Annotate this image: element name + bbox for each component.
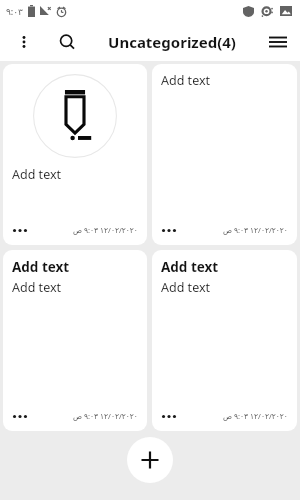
staticText: Add text xyxy=(161,258,219,276)
staticText: ٩:٠٣ xyxy=(6,5,23,17)
staticText: Add text xyxy=(161,279,211,296)
button[interactable]: Uncategorized(4) xyxy=(108,32,236,52)
staticText: ١٢/٠٢/٢٠٢٠ ٩:٠٣ ص xyxy=(73,225,138,235)
button[interactable]: Add note xyxy=(127,437,173,483)
staticText: Add text xyxy=(161,72,211,89)
staticText: Add text xyxy=(12,279,62,296)
button[interactable]: Add text xyxy=(152,250,297,431)
button[interactable]: Menu xyxy=(262,26,294,58)
staticText: Uncategorized(4) xyxy=(108,32,236,52)
button[interactable]: Add text xyxy=(3,250,147,431)
button[interactable]: Note options xyxy=(161,221,187,239)
button[interactable]: Note options xyxy=(12,407,38,425)
staticText: ١٢/٠٢/٢٠٢٠ ٩:٠٣ ص xyxy=(223,411,288,421)
staticText: ١٢/٠٢/٢٠٢٠ ٩:٠٣ ص xyxy=(223,225,288,235)
button[interactable]: More options xyxy=(10,28,38,56)
button[interactable]: Add text xyxy=(3,64,147,245)
button[interactable]: Search xyxy=(52,27,82,57)
staticText: Add text xyxy=(12,258,70,276)
button[interactable]: Note options xyxy=(12,221,38,239)
staticText: ١٢/٠٢/٢٠٢٠ ٩:٠٣ ص xyxy=(73,411,138,421)
button[interactable]: Add text xyxy=(152,64,297,245)
staticText: Add text xyxy=(12,166,62,183)
button[interactable]: Note options xyxy=(161,407,187,425)
